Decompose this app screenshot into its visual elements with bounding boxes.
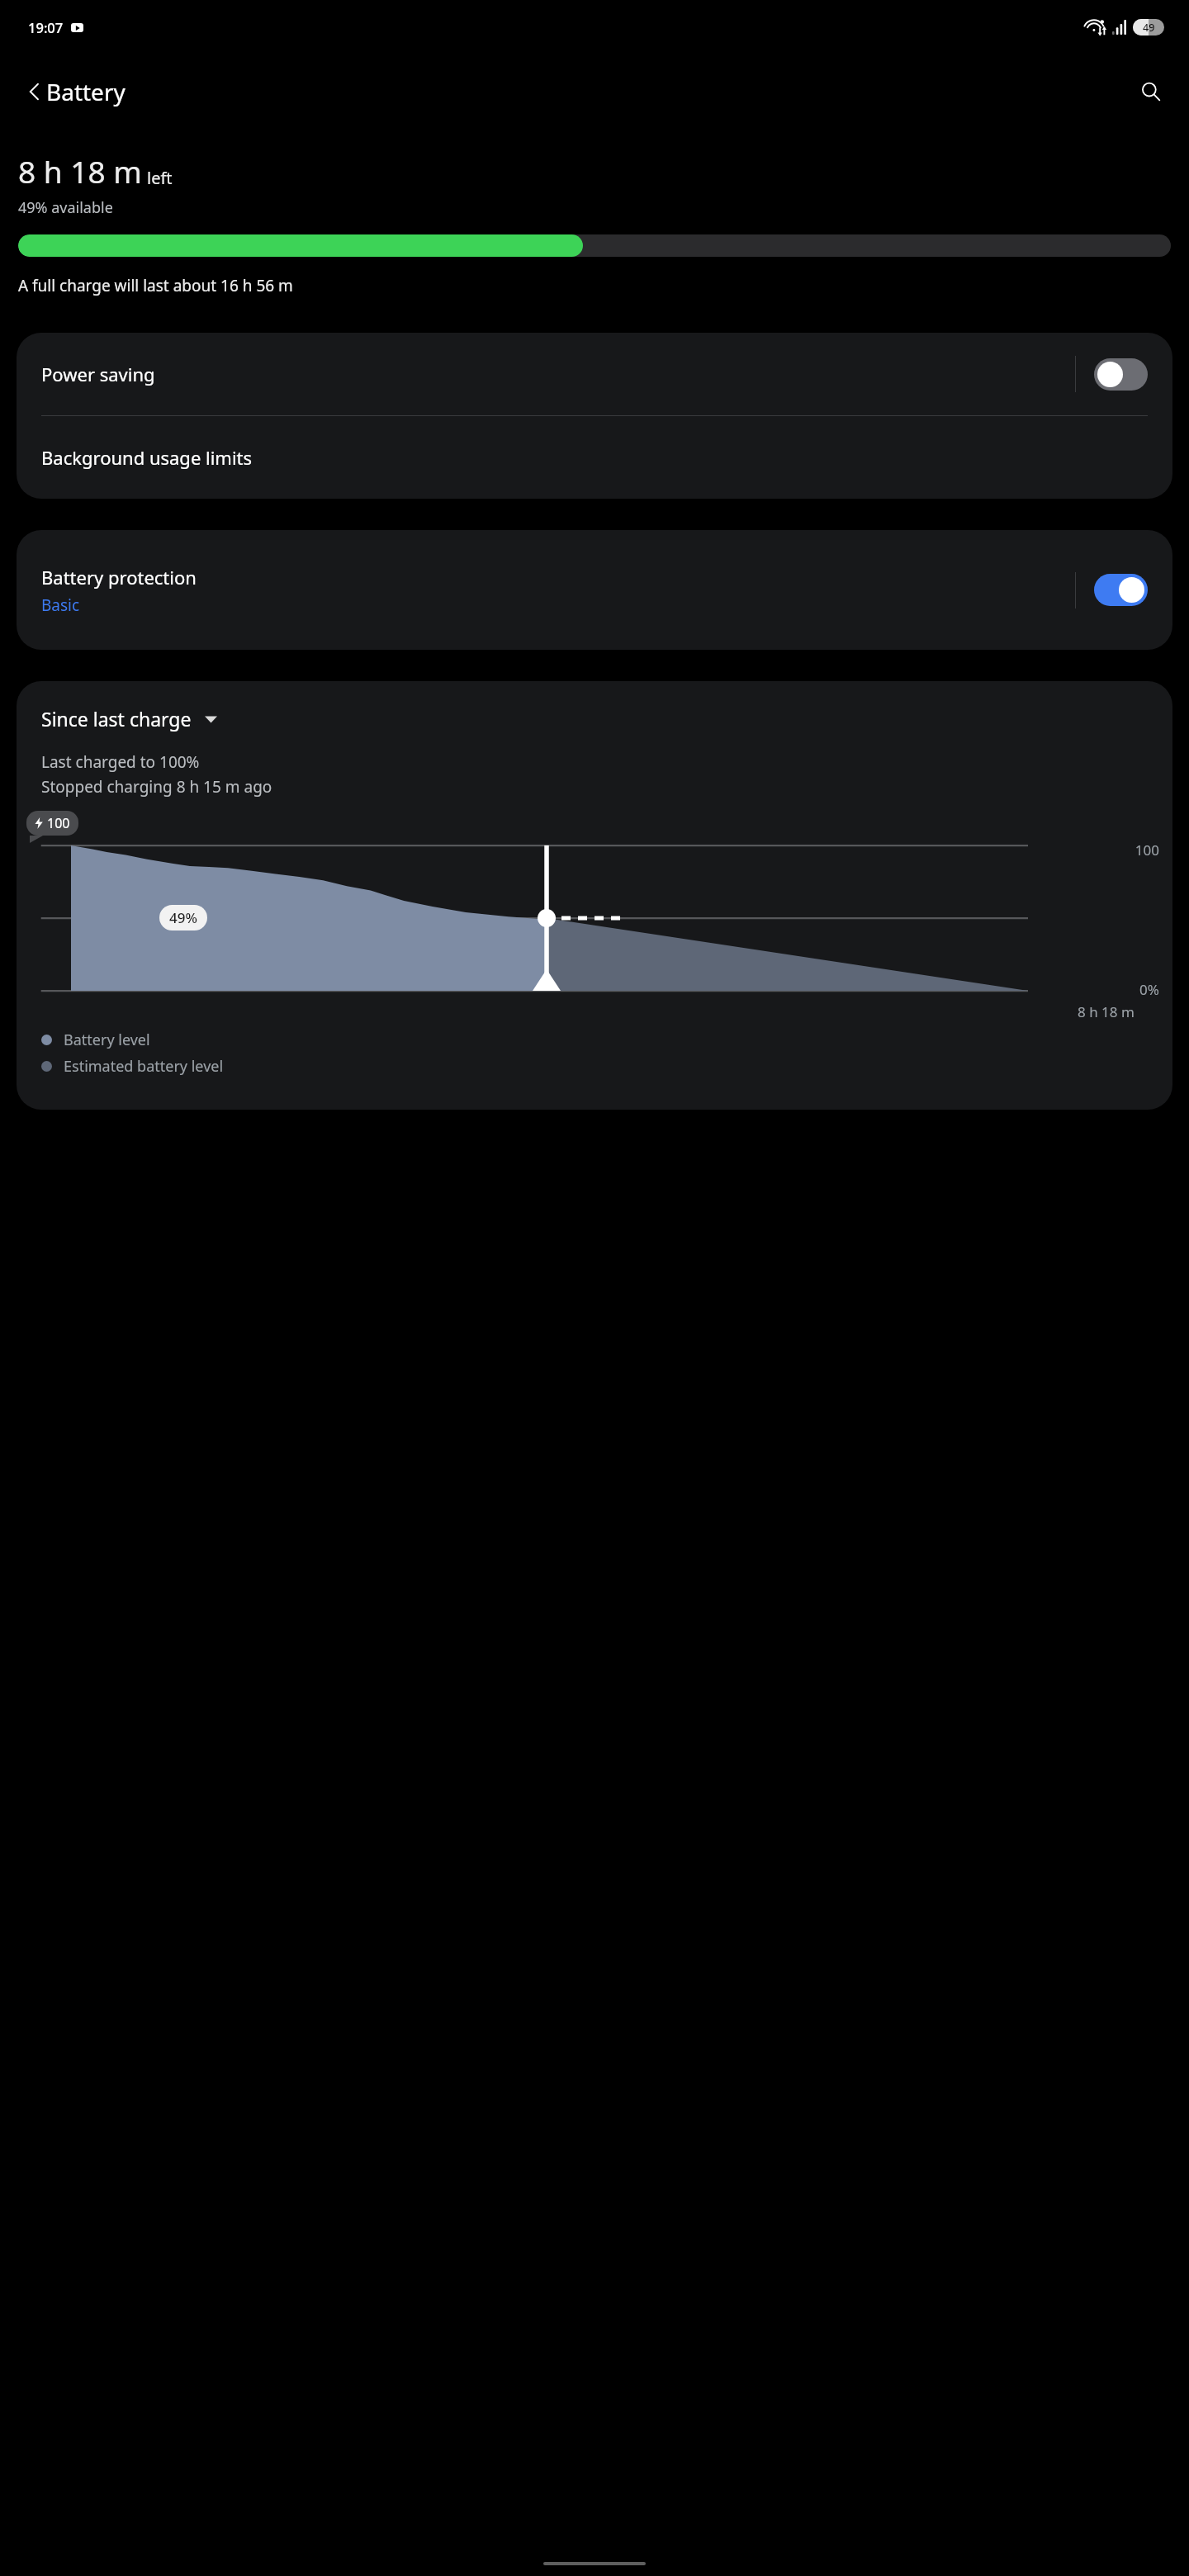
staticText: 100 <box>17 841 1159 859</box>
staticText: Estimated battery level <box>64 1056 224 1077</box>
button[interactable]: On <box>1094 574 1148 606</box>
staticText: 8 h 18 m <box>1078 1002 1135 1021</box>
staticText: 49% available <box>18 197 113 218</box>
staticText: 100 <box>47 814 70 832</box>
staticText: Since last charge <box>41 706 192 732</box>
staticText: 8 h 18 m <box>18 150 142 192</box>
staticText: Stopped charging 8 h 15 m ago <box>41 776 272 798</box>
staticText: 19:07 <box>28 18 64 36</box>
staticText: 0% <box>1139 980 1159 999</box>
staticText: left <box>147 167 173 189</box>
staticText: Last charged to 100% <box>41 751 200 773</box>
button[interactable]: Since last charge <box>41 706 217 732</box>
staticText: Basic <box>41 594 80 616</box>
staticText: Power saving <box>41 362 1075 386</box>
staticText: A full charge will last about 16 h 56 m <box>18 275 293 296</box>
staticText: Battery level <box>64 1030 150 1050</box>
staticText: Battery protection <box>41 565 197 590</box>
button[interactable]: Back <box>12 69 58 115</box>
staticText: Battery <box>46 76 126 107</box>
button[interactable]: Off <box>1094 358 1148 391</box>
button[interactable]: Power saving <box>17 333 1172 415</box>
staticText: Background usage limits <box>41 445 253 470</box>
staticText: 49% <box>169 908 197 927</box>
staticText: 49 <box>1143 21 1155 35</box>
button[interactable]: Search <box>1128 69 1174 115</box>
button[interactable]: Background usage limits <box>17 416 1172 499</box>
button[interactable]: Battery protection <box>17 530 1172 650</box>
